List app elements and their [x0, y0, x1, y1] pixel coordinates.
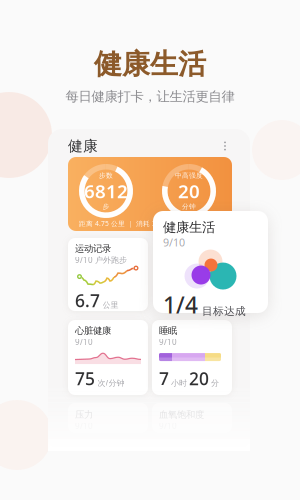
button[interactable]: 心脏健康 [68, 320, 148, 395]
staticText: 次/分钟 [97, 377, 124, 388]
staticText: 75 [75, 367, 95, 390]
staticText: 血氧饱和度 [159, 409, 204, 420]
staticText: 步数 [99, 171, 113, 180]
staticText: 压力 [75, 409, 93, 420]
staticText: 距离 4.75 公里 ｜ 消耗 320 千卡 [79, 219, 180, 228]
button[interactable]: 运动记录 [68, 238, 148, 311]
staticText: 心脏健康 [75, 325, 111, 336]
staticText: 健康 [68, 137, 98, 155]
button[interactable]: 睡眠 [152, 320, 232, 395]
staticText: 中高强度 [175, 171, 203, 180]
staticText: 运动记录 [75, 243, 111, 254]
staticText: 公里 [102, 300, 118, 310]
staticText: 9/10 [159, 336, 177, 347]
staticText: 分 [211, 378, 219, 388]
staticText: 6812 [84, 179, 128, 203]
button[interactable]: 步数 [68, 157, 232, 231]
button[interactable]: 血氧饱和度 [152, 403, 232, 433]
staticText: 9/10 户外跑步 [75, 254, 127, 265]
staticText: 目标达成 [202, 304, 246, 318]
staticText: 9/10 [75, 336, 93, 347]
staticText: 步 [102, 202, 109, 211]
staticText: 睡眠 [159, 325, 177, 336]
staticText: 20 [178, 179, 200, 203]
staticText: 9/10 [163, 235, 185, 250]
staticText: 小时 [171, 378, 187, 388]
staticText: 1/4 [163, 289, 198, 320]
staticText: 健康生活 [163, 219, 215, 235]
staticText: 6.7 [75, 289, 100, 312]
staticText: 健康生活 [94, 47, 206, 81]
staticText: 7 [159, 367, 169, 390]
staticText: 每日健康打卡，让生活更自律 [65, 88, 234, 105]
staticText: 分钟 [182, 202, 196, 211]
staticText: 20 [189, 367, 209, 390]
button[interactable]: 更多 [218, 138, 232, 154]
